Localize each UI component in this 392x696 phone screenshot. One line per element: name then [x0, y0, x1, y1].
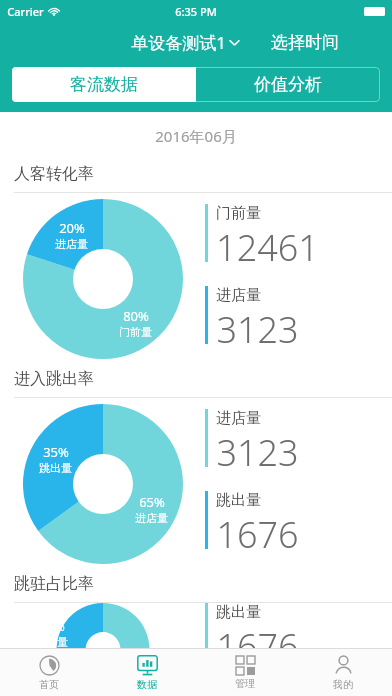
staticText: 35% [43, 443, 69, 461]
staticText: 2016年06月 [155, 126, 237, 146]
staticText: 驻店量 [35, 635, 68, 649]
staticText: 进入跳出率 [14, 369, 94, 389]
staticText: 进店量 [55, 237, 88, 251]
button[interactable]: 首页 [0, 649, 98, 696]
staticText: 3123 [216, 428, 299, 477]
staticText: 我的 [333, 678, 353, 691]
staticText: 驻店量 [216, 685, 261, 696]
button[interactable]: 管理 [196, 649, 294, 696]
button[interactable]: 价值分析 [196, 67, 380, 102]
staticText: 进店量 [135, 511, 168, 525]
staticText: 人客转化率 [14, 164, 94, 184]
staticText: 进店量 [216, 409, 261, 428]
staticText: 12461 [216, 223, 319, 272]
staticText: 数据 [137, 678, 157, 691]
staticText: 60% [143, 651, 169, 669]
button[interactable]: 单设备测试1 [128, 26, 243, 59]
staticText: 价值分析 [254, 74, 322, 95]
button[interactable]: 数据 [98, 649, 196, 696]
button[interactable]: 选择时间 [267, 27, 343, 58]
staticText: 1676 [216, 622, 299, 671]
staticText: 80% [123, 307, 149, 325]
button[interactable]: 客流数据 [12, 67, 196, 102]
staticText: 门前量 [216, 204, 261, 223]
staticText: 6:35 PM [175, 4, 217, 19]
staticText: 首页 [39, 678, 59, 691]
staticText: 3123 [216, 305, 299, 354]
staticText: 客流数据 [70, 74, 138, 95]
staticText: 跳出量 [39, 461, 72, 475]
staticText: 选择时间 [271, 32, 339, 53]
staticText: Carrier [7, 4, 44, 19]
staticText: 跳出量 [139, 669, 172, 683]
staticText: 跳出量 [216, 491, 261, 510]
staticText: 65% [139, 493, 165, 511]
staticText: 管理 [235, 677, 255, 690]
staticText: 进店量 [216, 286, 261, 305]
staticText: 单设备测试1 [131, 31, 226, 54]
staticText: 跳出量 [216, 603, 261, 622]
staticText: 20% [59, 219, 85, 237]
button[interactable]: 我的 [294, 649, 392, 696]
staticText: 1676 [216, 510, 299, 559]
staticText: 40% [39, 617, 65, 635]
staticText: 跳驻占比率 [14, 574, 94, 594]
staticText: 门前量 [119, 325, 152, 339]
